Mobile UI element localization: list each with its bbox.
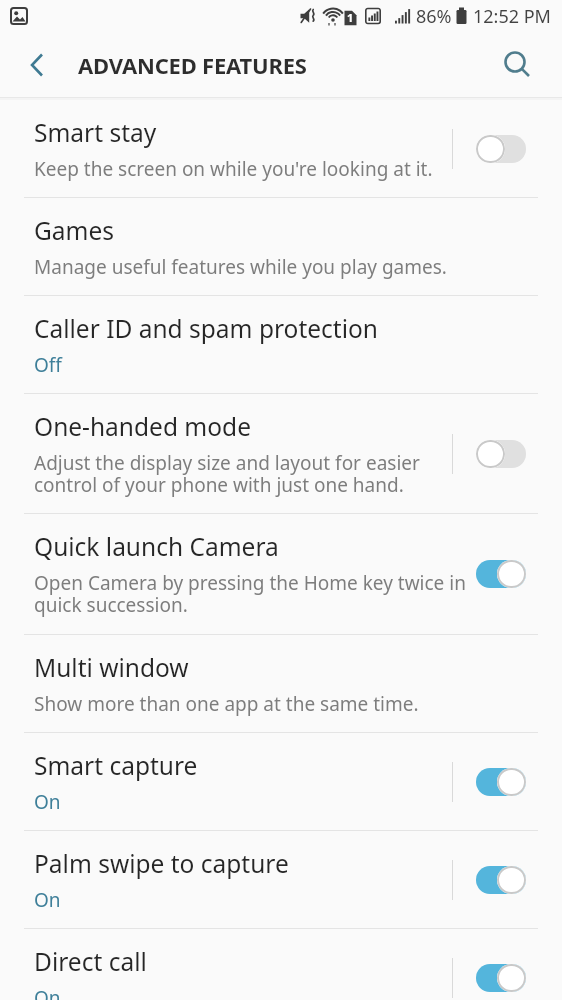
staticText: Smart stay [34,116,157,149]
staticText: Direct call [34,945,147,978]
button[interactable] [476,768,526,796]
staticText: Palm swipe to capture [34,847,289,880]
button[interactable]: Multi window [0,635,562,732]
button[interactable]: Games [0,198,562,295]
staticText: Caller ID and spam protection [34,312,378,345]
staticText: One-handed mode [34,410,251,443]
staticText: Adjust the display size and layout for e… [34,450,420,498]
staticText: 12:52 PM [473,4,551,29]
staticText: On [34,789,61,815]
button[interactable]: Caller ID and spam protection [0,296,562,393]
button[interactable]: Smart capture [0,733,562,830]
button[interactable] [476,964,526,992]
staticText: On [34,985,61,1000]
button[interactable]: Direct call [0,929,562,1000]
button[interactable] [497,45,537,85]
button[interactable]: Palm swipe to capture [0,831,562,928]
staticText: Smart capture [34,749,198,782]
button[interactable]: Quick launch Camera [0,514,562,634]
staticText: Off [34,352,62,378]
button[interactable] [476,866,526,894]
staticText: Games [34,214,115,247]
staticText: Quick launch Camera [34,530,279,563]
staticText: Show more than one app at the same time. [34,691,419,717]
staticText: 1 [347,10,354,25]
staticText: Open Camera by pressing the Home key twi… [34,570,466,618]
staticText: Manage useful features while you play ga… [34,254,447,280]
staticText: Keep the screen on while you're looking … [34,156,433,182]
button[interactable] [476,135,526,163]
button[interactable]: One-handed mode [0,394,562,513]
staticText: 86% [416,4,452,29]
staticText: ADVANCED FEATURES [78,50,307,80]
button[interactable] [17,45,57,85]
staticText: Multi window [34,651,189,684]
button[interactable]: Smart stay [0,100,562,197]
staticText: On [34,887,61,913]
button[interactable] [476,560,526,588]
button[interactable] [476,440,526,468]
